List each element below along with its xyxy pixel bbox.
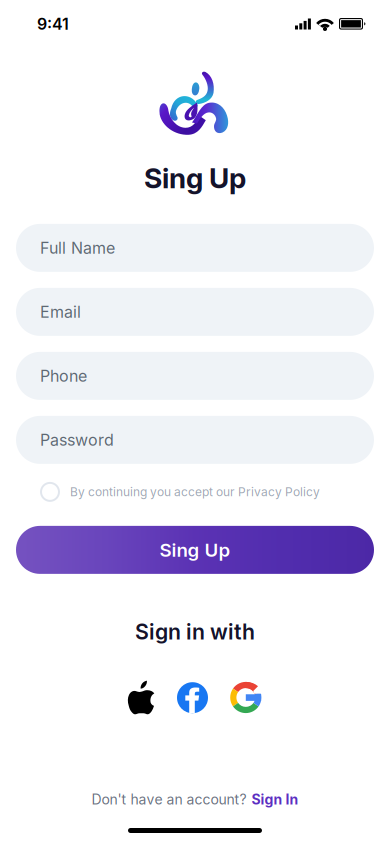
staticText: 9:41 bbox=[37, 14, 69, 34]
button[interactable]: Email bbox=[16, 288, 374, 336]
button[interactable]: Sign In bbox=[251, 791, 298, 808]
staticText: Sing Up bbox=[159, 539, 230, 561]
button[interactable]: By continuing you accept our Privacy Pol… bbox=[0, 480, 390, 504]
button[interactable]: Sign in with Google bbox=[230, 682, 262, 714]
button[interactable]: Phone bbox=[16, 352, 374, 400]
staticText: Full Name bbox=[40, 238, 115, 258]
staticText: Sign in with bbox=[135, 619, 255, 645]
button[interactable]: Password bbox=[16, 416, 374, 464]
staticText: Email bbox=[40, 302, 81, 322]
button[interactable]: Full Name bbox=[16, 224, 374, 272]
staticText: Sing Up bbox=[144, 161, 246, 195]
staticText: Phone bbox=[40, 366, 87, 386]
staticText: Password bbox=[40, 430, 114, 450]
staticText: By continuing you accept our Privacy Pol… bbox=[70, 485, 320, 499]
button[interactable]: Sign in with Facebook bbox=[177, 682, 208, 713]
staticText: Sign In bbox=[251, 791, 298, 808]
staticText: Don't have an account? bbox=[91, 791, 246, 808]
button[interactable]: Sign in with Apple bbox=[128, 681, 155, 715]
button[interactable]: Sing Up bbox=[16, 526, 374, 574]
